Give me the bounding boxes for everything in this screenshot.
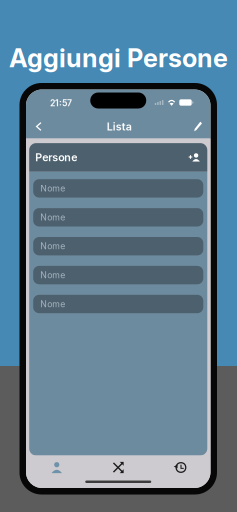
button[interactable]: Back: [26, 112, 51, 138]
staticText: Nome: [40, 241, 65, 251]
button[interactable]: Nome: [33, 295, 203, 313]
staticText: 21:57: [50, 98, 72, 108]
button[interactable]: History: [149, 455, 210, 479]
button[interactable]: Nome: [33, 208, 203, 226]
button[interactable]: Edit: [185, 112, 210, 138]
button[interactable]: Nome: [33, 179, 203, 198]
button[interactable]: Nome: [33, 237, 203, 255]
button[interactable]: Add person: [182, 143, 206, 172]
button[interactable]: Shuffle: [87, 455, 149, 479]
staticText: Nome: [40, 212, 65, 223]
staticText: Nome: [40, 270, 65, 280]
staticText: Aggiungi Persone: [9, 43, 228, 73]
staticText: Nome: [40, 299, 65, 309]
staticText: Nome: [40, 183, 65, 194]
button[interactable]: Nome: [33, 266, 203, 284]
staticText: Persone: [35, 151, 77, 164]
button[interactable]: People: [26, 455, 87, 479]
staticText: Lista: [107, 120, 132, 133]
